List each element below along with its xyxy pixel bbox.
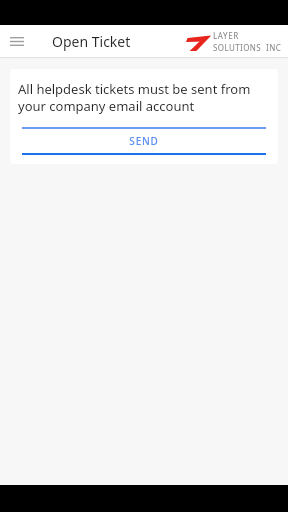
button[interactable]: Open navigation menu bbox=[0, 25, 33, 58]
staticText: Open Ticket bbox=[52, 32, 131, 51]
staticText: SEND bbox=[129, 134, 159, 148]
button[interactable]: SEND bbox=[10, 127, 278, 155]
staticText: All helpdesk tickets must be sent from y… bbox=[18, 80, 270, 115]
staticText: SOLUTIONS INC bbox=[213, 42, 282, 53]
staticText: LAYER bbox=[213, 30, 239, 41]
button[interactable]: Layer Solutions Inc logo bbox=[186, 30, 282, 53]
